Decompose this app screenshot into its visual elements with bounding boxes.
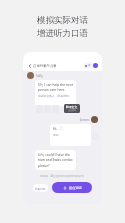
staticText: Hi. <box>53 126 58 131</box>
staticText: 这边这位客人，我来帮您。 <box>38 94 72 98</box>
staticText: Sally <box>36 74 43 78</box>
staticText: 增进听力口语 <box>37 28 88 39</box>
staticText: 请稍候，AI正在思考中或等待你的语音 <box>40 174 85 178</box>
staticText: 点击收起 <box>68 109 76 112</box>
staticText: James <box>80 118 89 122</box>
staticText: 按住说话 <box>69 186 82 190</box>
staticText: 在便利餐厅点餐 <box>33 64 57 68</box>
staticText: 翻译全文 <box>66 105 78 109</box>
button[interactable]: Back <box>27 63 33 69</box>
staticText: Um, could I have the ham and Swiss combo… <box>38 152 73 168</box>
staticText: 你好。 <box>53 133 62 137</box>
staticText: 结束对话 <box>35 187 46 190</box>
button[interactable]: 按住说话 <box>52 182 92 193</box>
staticText: Uh, I can help the next person over here… <box>38 82 73 92</box>
staticText: 模拟实际对话 <box>37 15 88 26</box>
staticText: 译 <box>88 64 91 67</box>
button[interactable]: 结束对话 <box>33 184 48 192</box>
button[interactable]: Translation toggle <box>84 63 97 68</box>
